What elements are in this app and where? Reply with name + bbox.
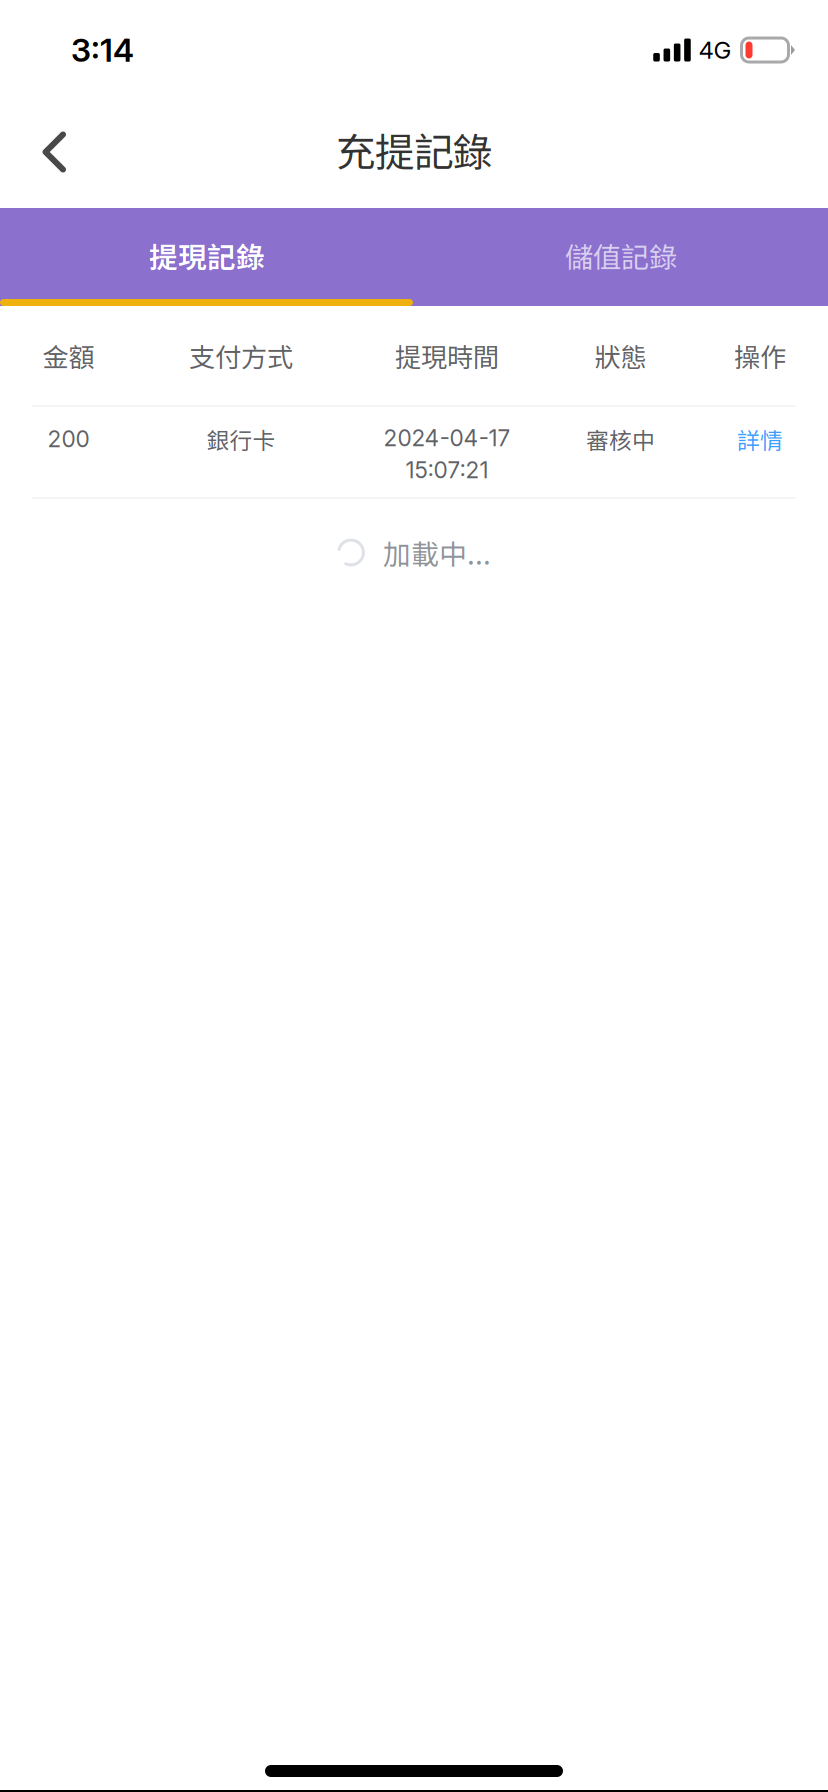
button[interactable]: 詳情	[692, 422, 828, 456]
staticText: 金額	[42, 337, 94, 374]
staticText: 審核中	[586, 423, 655, 455]
staticText: 提現時間	[395, 337, 499, 374]
staticText: 操作	[734, 337, 786, 374]
button[interactable]: Back	[0, 88, 110, 208]
staticText: 狀態	[594, 337, 646, 374]
staticText: 提現記錄	[149, 235, 265, 276]
staticText: 充提記錄	[336, 121, 492, 178]
staticText: 支付方式	[189, 337, 293, 374]
staticText: 銀行卡	[206, 423, 275, 455]
staticText: 儲值記錄	[565, 235, 677, 276]
staticText: 2024-04-17	[383, 424, 510, 452]
staticText: 詳情	[737, 423, 783, 455]
button[interactable]: 儲值記錄	[414, 208, 828, 306]
staticText: 3:14	[71, 31, 134, 69]
staticText: 加載中...	[383, 532, 491, 573]
staticText: 200	[47, 425, 89, 453]
staticText: 4G	[698, 35, 731, 64]
button[interactable]: 提現記錄	[0, 208, 414, 306]
staticText: 15:07:21	[405, 456, 488, 484]
